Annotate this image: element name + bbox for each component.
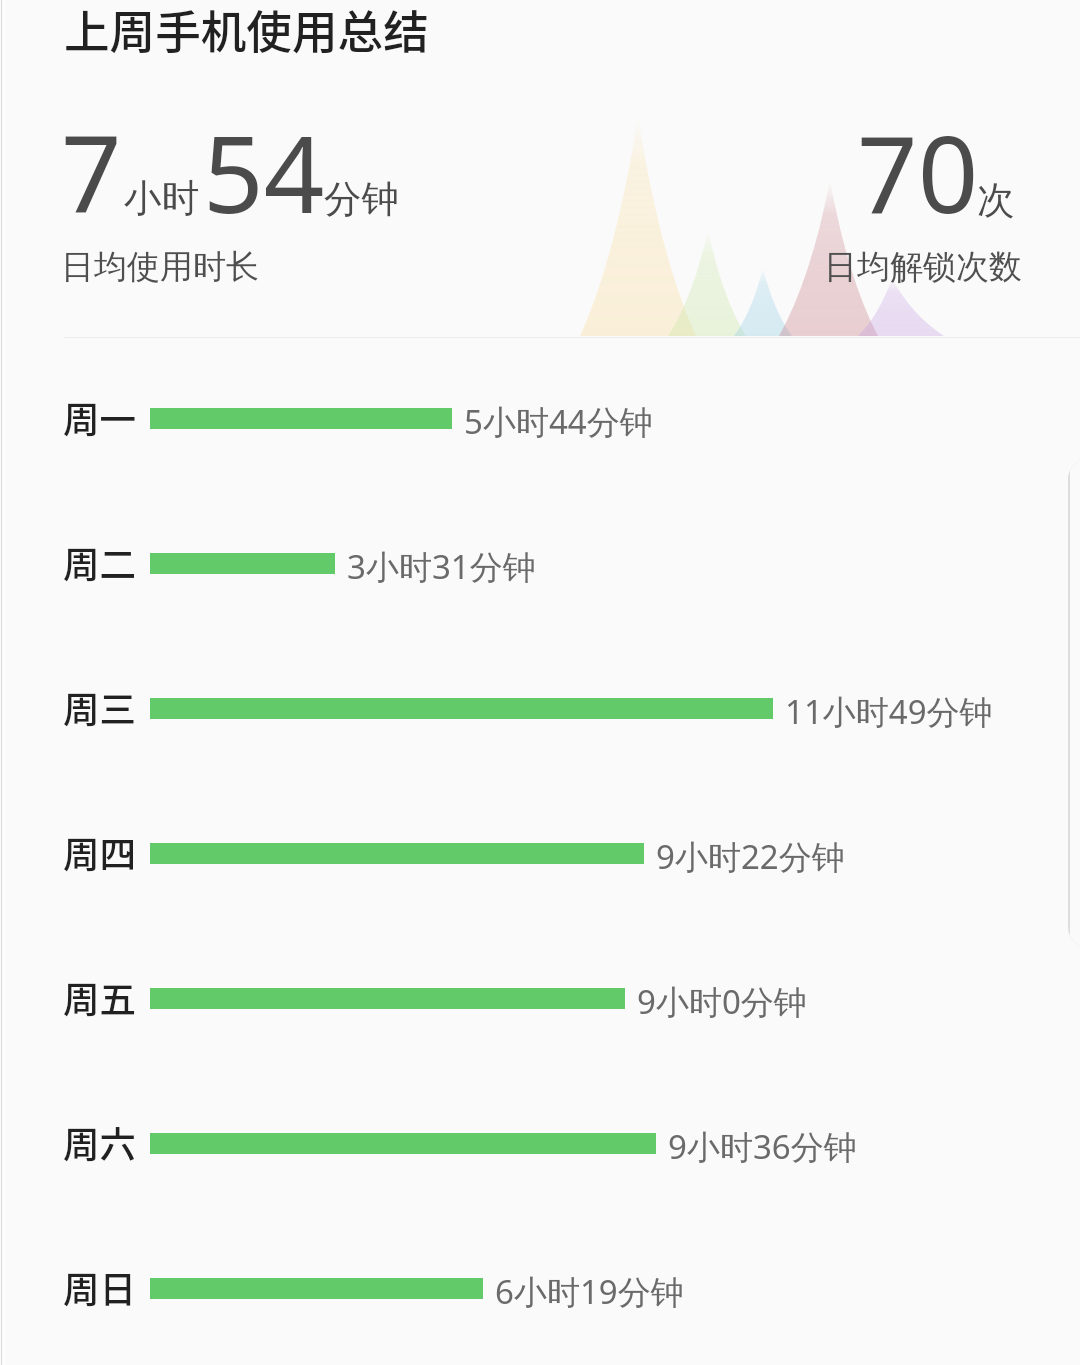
button[interactable]: 周四 xyxy=(0,817,1080,889)
staticText: 9小时36分钟 xyxy=(668,1124,857,1169)
staticText: 小时 xyxy=(124,175,200,222)
staticText: 上周手机使用总结 xyxy=(64,0,429,62)
button[interactable]: 周五 xyxy=(0,962,1080,1034)
staticText: 日均解锁次数 xyxy=(824,246,1022,288)
staticText: 7 xyxy=(61,99,122,243)
staticText: 日均使用时长 xyxy=(61,246,259,288)
staticText: 次 xyxy=(977,177,1015,224)
staticText: 周六 xyxy=(63,1116,136,1169)
staticText: 周五 xyxy=(63,971,136,1024)
button[interactable]: 周三 xyxy=(0,672,1080,744)
staticText: 3小时31分钟 xyxy=(347,544,536,589)
staticText: 70 xyxy=(857,100,979,244)
staticText: 6小时19分钟 xyxy=(495,1269,684,1314)
staticText: 周一 xyxy=(63,391,136,444)
button[interactable]: 周二 xyxy=(0,527,1080,599)
staticText: 9小时22分钟 xyxy=(656,834,845,879)
staticText: 11小时49分钟 xyxy=(785,689,993,734)
button[interactable]: 周六 xyxy=(0,1107,1080,1179)
staticText: 分钟 xyxy=(324,176,400,223)
staticText: 周日 xyxy=(63,1261,136,1314)
staticText: 周四 xyxy=(63,826,136,879)
staticText: 9小时0分钟 xyxy=(637,979,807,1024)
staticText: 5小时44分钟 xyxy=(464,399,653,444)
button[interactable]: 周一 xyxy=(0,382,1080,454)
staticText: 周三 xyxy=(63,681,136,734)
staticText: 54 xyxy=(203,100,325,244)
staticText: 周二 xyxy=(63,536,136,589)
button[interactable]: 周日 xyxy=(0,1252,1080,1324)
